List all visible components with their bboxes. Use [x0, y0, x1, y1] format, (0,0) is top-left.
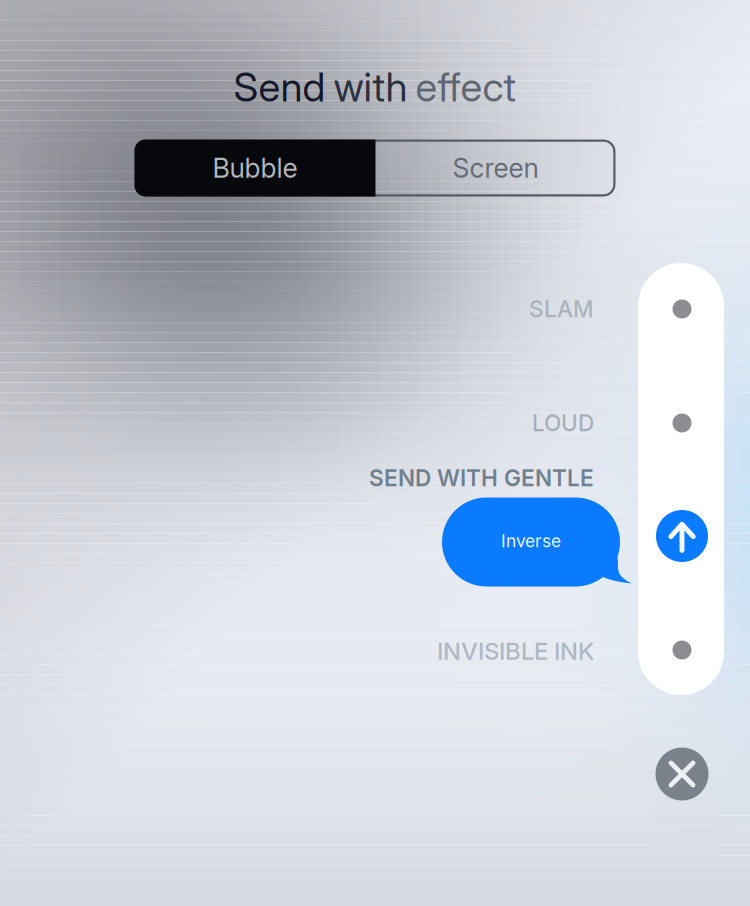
staticText: Bubble	[212, 152, 297, 184]
button[interactable]: Loud	[672, 413, 691, 432]
button[interactable]: Invisible Ink	[672, 640, 691, 659]
staticText: INVISIBLE INK	[437, 636, 594, 665]
staticText: SLAM	[529, 295, 594, 323]
button[interactable]: Close	[655, 747, 708, 800]
staticText: with	[333, 63, 407, 111]
button[interactable]: Slam	[672, 299, 691, 318]
button[interactable]: Bubble	[134, 139, 375, 196]
staticText: Send	[233, 63, 325, 111]
staticText: Screen	[452, 152, 538, 184]
staticText: effect	[415, 63, 516, 111]
button[interactable]: Send with Gentle	[656, 510, 708, 562]
button[interactable]: Screen	[375, 139, 615, 196]
staticText: Inverse	[501, 530, 561, 551]
staticText: SEND WITH GENTLE	[369, 464, 594, 492]
staticText: LOUD	[532, 409, 594, 437]
